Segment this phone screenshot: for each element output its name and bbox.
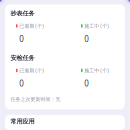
staticText: 安检任务 bbox=[10, 54, 34, 62]
staticText: 0 bbox=[19, 78, 24, 89]
staticText: 抄表任务 bbox=[10, 9, 34, 17]
staticText: 已逾期 (个) bbox=[19, 67, 44, 74]
staticText: 0 bbox=[19, 33, 24, 44]
staticText: 施工中 (个) bbox=[84, 67, 109, 74]
staticText: 0 bbox=[84, 33, 89, 44]
staticText: 0 bbox=[84, 78, 89, 89]
staticText: 施工中 (个) bbox=[84, 22, 109, 29]
staticText: 常用应用 bbox=[10, 117, 34, 125]
staticText: 已逾期 (个) bbox=[19, 22, 44, 29]
staticText: 任务上次更新时间：无 bbox=[10, 96, 60, 103]
